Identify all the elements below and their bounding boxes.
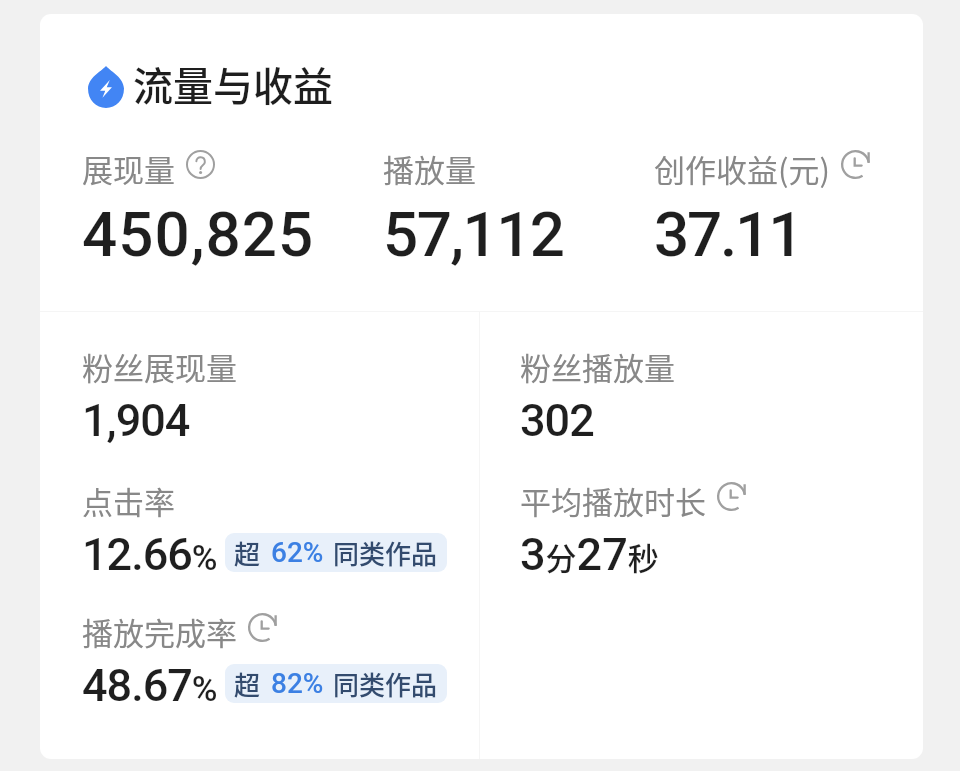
staticText: 播放完成率 [82,609,237,654]
button[interactable]: 超 [225,664,447,703]
button[interactable]: 点击率 [82,478,447,581]
staticText: 302 [520,394,594,447]
staticText: 粉丝播放量 [520,344,675,389]
staticText: 超 [234,534,261,572]
button[interactable]: 展现量 [82,146,315,271]
button[interactable]: 粉丝展现量 [82,344,237,447]
button[interactable]: 平均播放时长 [520,478,744,581]
other: Help [186,150,215,179]
staticText: 点击率 [82,478,175,523]
staticText: 同类作品 [333,665,438,703]
other: Updated daily [841,150,870,179]
staticText: 3分27秒 [520,528,659,581]
staticText: 同类作品 [333,534,438,572]
other: Updated daily [248,613,277,642]
button[interactable]: 播放量 [383,146,564,271]
staticText: 播放量 [383,146,476,191]
staticText: 37.11 [654,198,802,271]
staticText: 粉丝展现量 [82,344,237,389]
staticText: 流量与收益 [133,55,333,113]
staticText: 62% [271,536,324,569]
staticText: 1,904 [82,394,190,447]
staticText: 450,825 [82,198,315,271]
staticText: 展现量 [82,146,175,191]
button[interactable]: Traffic and earnings [86,55,333,113]
button[interactable]: 创作收益(元) [654,146,868,271]
other: Updated daily [717,482,746,511]
staticText: 48.67% [82,659,217,712]
button[interactable]: 播放完成率 [82,609,447,712]
button[interactable]: 粉丝播放量 [520,344,675,447]
staticText: 超 [234,665,261,703]
staticText: 12.66% [82,528,217,581]
staticText: 82% [271,667,324,700]
button[interactable]: 超 [225,533,447,572]
staticText: 57,112 [383,198,564,271]
staticText: 创作收益(元) [654,146,830,191]
other: Traffic and earnings [88,66,124,108]
staticText: 平均播放时长 [520,478,706,523]
